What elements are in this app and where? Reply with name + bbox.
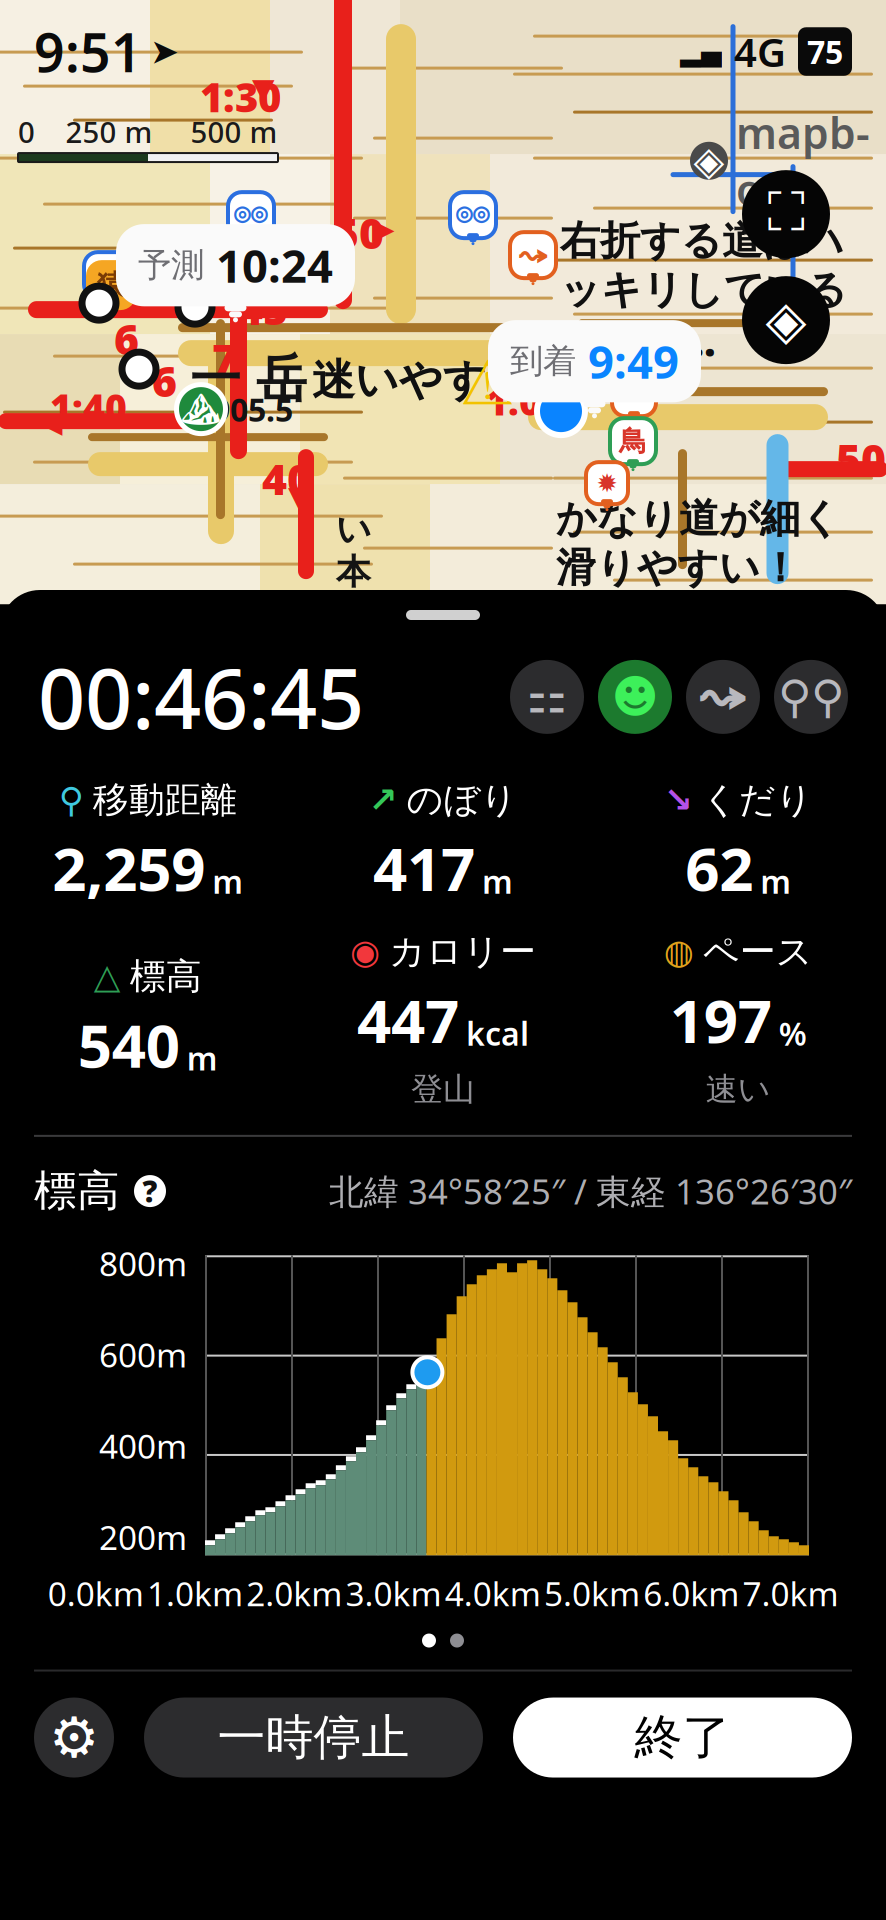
staticText: 3.0km — [345, 1571, 441, 1616]
staticText: m — [212, 860, 243, 903]
staticText: ⚙ — [49, 1706, 99, 1769]
staticText: kcal — [466, 1012, 529, 1055]
staticText: 75 — [807, 30, 843, 73]
staticText: 1:05 — [486, 376, 563, 426]
staticText: 2,259 — [52, 828, 205, 908]
staticText: 62 — [685, 828, 753, 908]
staticText: 45 — [238, 280, 288, 337]
staticText: 1.0km — [147, 1571, 243, 1616]
staticText: ☻ — [611, 671, 658, 723]
button[interactable]: 地図レイヤー — [742, 276, 830, 364]
staticText: 800m — [99, 1241, 187, 1286]
staticText: ⤳ — [517, 242, 549, 268]
staticText: ◍ — [664, 932, 694, 971]
staticText: ⤳ — [696, 676, 749, 717]
staticText: 6.0km — [643, 1571, 739, 1616]
staticText: 4.0km — [445, 1571, 541, 1616]
staticText: ▼ — [288, 480, 311, 513]
staticText: ⚲⚲ — [778, 671, 844, 723]
staticText: 6 — [114, 310, 139, 367]
staticText: ⛰ — [180, 391, 221, 427]
staticText: mapbox — [736, 104, 870, 217]
button[interactable]: 一時停止 — [144, 1697, 483, 1777]
staticText: 540 — [78, 1004, 180, 1084]
staticText: 400m — [99, 1424, 187, 1468]
staticText: ◀ — [42, 408, 63, 438]
staticText: カロリー — [389, 930, 536, 974]
staticText: 鳥 — [619, 424, 647, 458]
button[interactable]: 終了 — [513, 1697, 852, 1777]
staticText: 9:51 — [34, 16, 142, 87]
staticText: ▶ — [372, 212, 395, 245]
staticText: ▶ — [284, 286, 307, 319]
button[interactable]: 分岐 — [686, 660, 760, 734]
button[interactable]: 画面分割 — [742, 170, 830, 258]
staticText: ◈ — [765, 290, 806, 350]
staticText: 50 — [334, 204, 384, 261]
staticText: ◈ — [693, 138, 724, 183]
button[interactable]: 標高 — [34, 1165, 166, 1217]
staticText: ➤ — [150, 32, 179, 71]
staticText: 2.0km — [246, 1571, 342, 1616]
staticText: 600m — [99, 1332, 187, 1377]
staticText: ↘ — [664, 780, 693, 819]
staticText: 1:30 — [200, 70, 281, 123]
staticText: 終了 — [634, 1708, 730, 1767]
staticText: 00:46:45 — [38, 642, 364, 752]
staticText: 一時停止 — [217, 1708, 409, 1767]
button[interactable]: ルート詳細 — [510, 660, 584, 734]
staticText: ⌾⌾ — [234, 199, 268, 231]
staticText: m — [482, 860, 513, 903]
staticText: 0.0km — [48, 1571, 144, 1616]
button[interactable]: メモを追加 — [598, 660, 672, 734]
staticText: 北緯 34°58′25″ / 東経 136°26′30″ — [329, 1168, 852, 1214]
staticText: ⛶ — [767, 188, 804, 240]
staticText: 7 — [212, 330, 237, 387]
staticText: のぼり — [406, 778, 517, 822]
staticText: 1:40 — [50, 382, 127, 432]
staticText: 5.0km — [544, 1571, 640, 1616]
staticText: 右折する道はハ ッキリしている が、念… — [560, 216, 847, 367]
staticText: ⌾⌾ — [456, 199, 490, 231]
staticText: 標高 — [34, 1165, 120, 1217]
staticText: m — [760, 860, 791, 903]
staticText: 移動距離 — [93, 778, 237, 822]
button[interactable]: 設定 — [34, 1697, 114, 1777]
staticText: ↗ — [368, 780, 397, 819]
staticText: ▼ — [252, 72, 275, 105]
staticText: ? — [142, 1172, 157, 1211]
staticText: ⚲ — [59, 780, 84, 819]
staticText: くだり — [702, 778, 813, 822]
staticText: 一 岳 — [190, 348, 307, 410]
staticText: 6 — [152, 352, 177, 409]
staticText: 0 — [18, 112, 35, 151]
staticText: 猿 — [97, 268, 125, 302]
staticText: ▂▄ — [680, 36, 722, 67]
staticText: △ — [94, 957, 121, 996]
staticText: 905.5 — [212, 388, 293, 431]
staticText: 速い — [706, 1070, 771, 1109]
staticText: ◉ — [350, 932, 380, 971]
staticText: 500 m — [190, 112, 277, 151]
staticText: ✹ — [596, 469, 617, 498]
staticText: 40 — [262, 450, 312, 507]
staticText: 200m — [99, 1515, 187, 1559]
staticText: 447 — [357, 980, 459, 1060]
staticText: 250 m — [65, 112, 152, 151]
staticText: かなり道が細く 滑りやすい！ — [556, 494, 841, 592]
staticText: 197 — [670, 980, 772, 1060]
button[interactable]: メンバー — [774, 660, 848, 734]
staticText: 到着 — [510, 341, 576, 382]
staticText: ⚏ — [526, 671, 567, 723]
staticText: 標高 — [130, 954, 202, 998]
staticText: % — [779, 1012, 807, 1055]
staticText: い 本 木 — [336, 508, 371, 636]
staticText: 予測 — [138, 245, 204, 286]
staticText: 迷いやすい — [312, 354, 531, 406]
staticText: 7.0km — [742, 1571, 838, 1616]
staticText: 50 — [836, 430, 886, 487]
staticText: ペース — [703, 930, 813, 974]
staticText: m — [187, 1037, 218, 1079]
staticText: 10:24 — [216, 235, 333, 295]
